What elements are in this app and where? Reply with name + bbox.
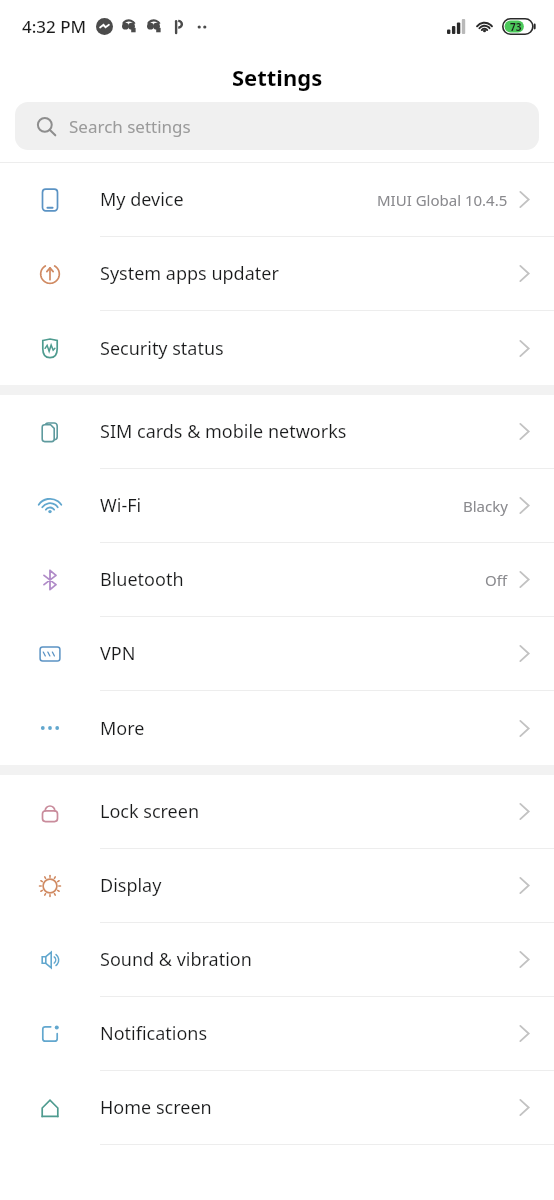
staticText: 4:32 PM [22,15,87,38]
button[interactable]: Notifications [0,997,554,1071]
staticText: Bluetooth [100,567,184,592]
staticText: 73 [510,20,522,34]
staticText: Settings [232,62,323,92]
staticText: Home screen [100,1095,212,1120]
button[interactable]: Sound & vibration [0,923,554,997]
staticText: More [100,716,145,741]
button[interactable]: System apps updater [0,237,554,311]
button[interactable]: Display [0,849,554,923]
staticText: Blacky [463,496,508,516]
button[interactable]: My device [0,163,554,237]
staticText: Off [485,570,508,590]
button[interactable]: Home screen [0,1071,554,1145]
button[interactable]: Search settings [15,102,539,150]
button[interactable]: Bluetooth [0,543,554,617]
staticText: MIUI Global 10.4.5 [377,190,508,210]
staticText: Lock screen [100,799,200,824]
staticText: VPN [100,641,136,666]
staticText: My device [100,187,184,212]
staticText: Wi-Fi [100,493,142,518]
staticText: Security status [100,336,224,361]
staticText: System apps updater [100,261,279,286]
staticText: Search settings [69,115,191,138]
button[interactable]: Lock screen [0,775,554,849]
button[interactable]: Security status [0,311,554,385]
staticText: Sound & vibration [100,947,252,972]
button[interactable]: More [0,691,554,765]
staticText: Display [100,873,162,898]
button[interactable]: SIM cards & mobile networks [0,395,554,469]
staticText: Notifications [100,1021,208,1046]
button[interactable]: Wi-Fi [0,469,554,543]
staticText: SIM cards & mobile networks [100,419,347,444]
button[interactable]: VPN [0,617,554,691]
